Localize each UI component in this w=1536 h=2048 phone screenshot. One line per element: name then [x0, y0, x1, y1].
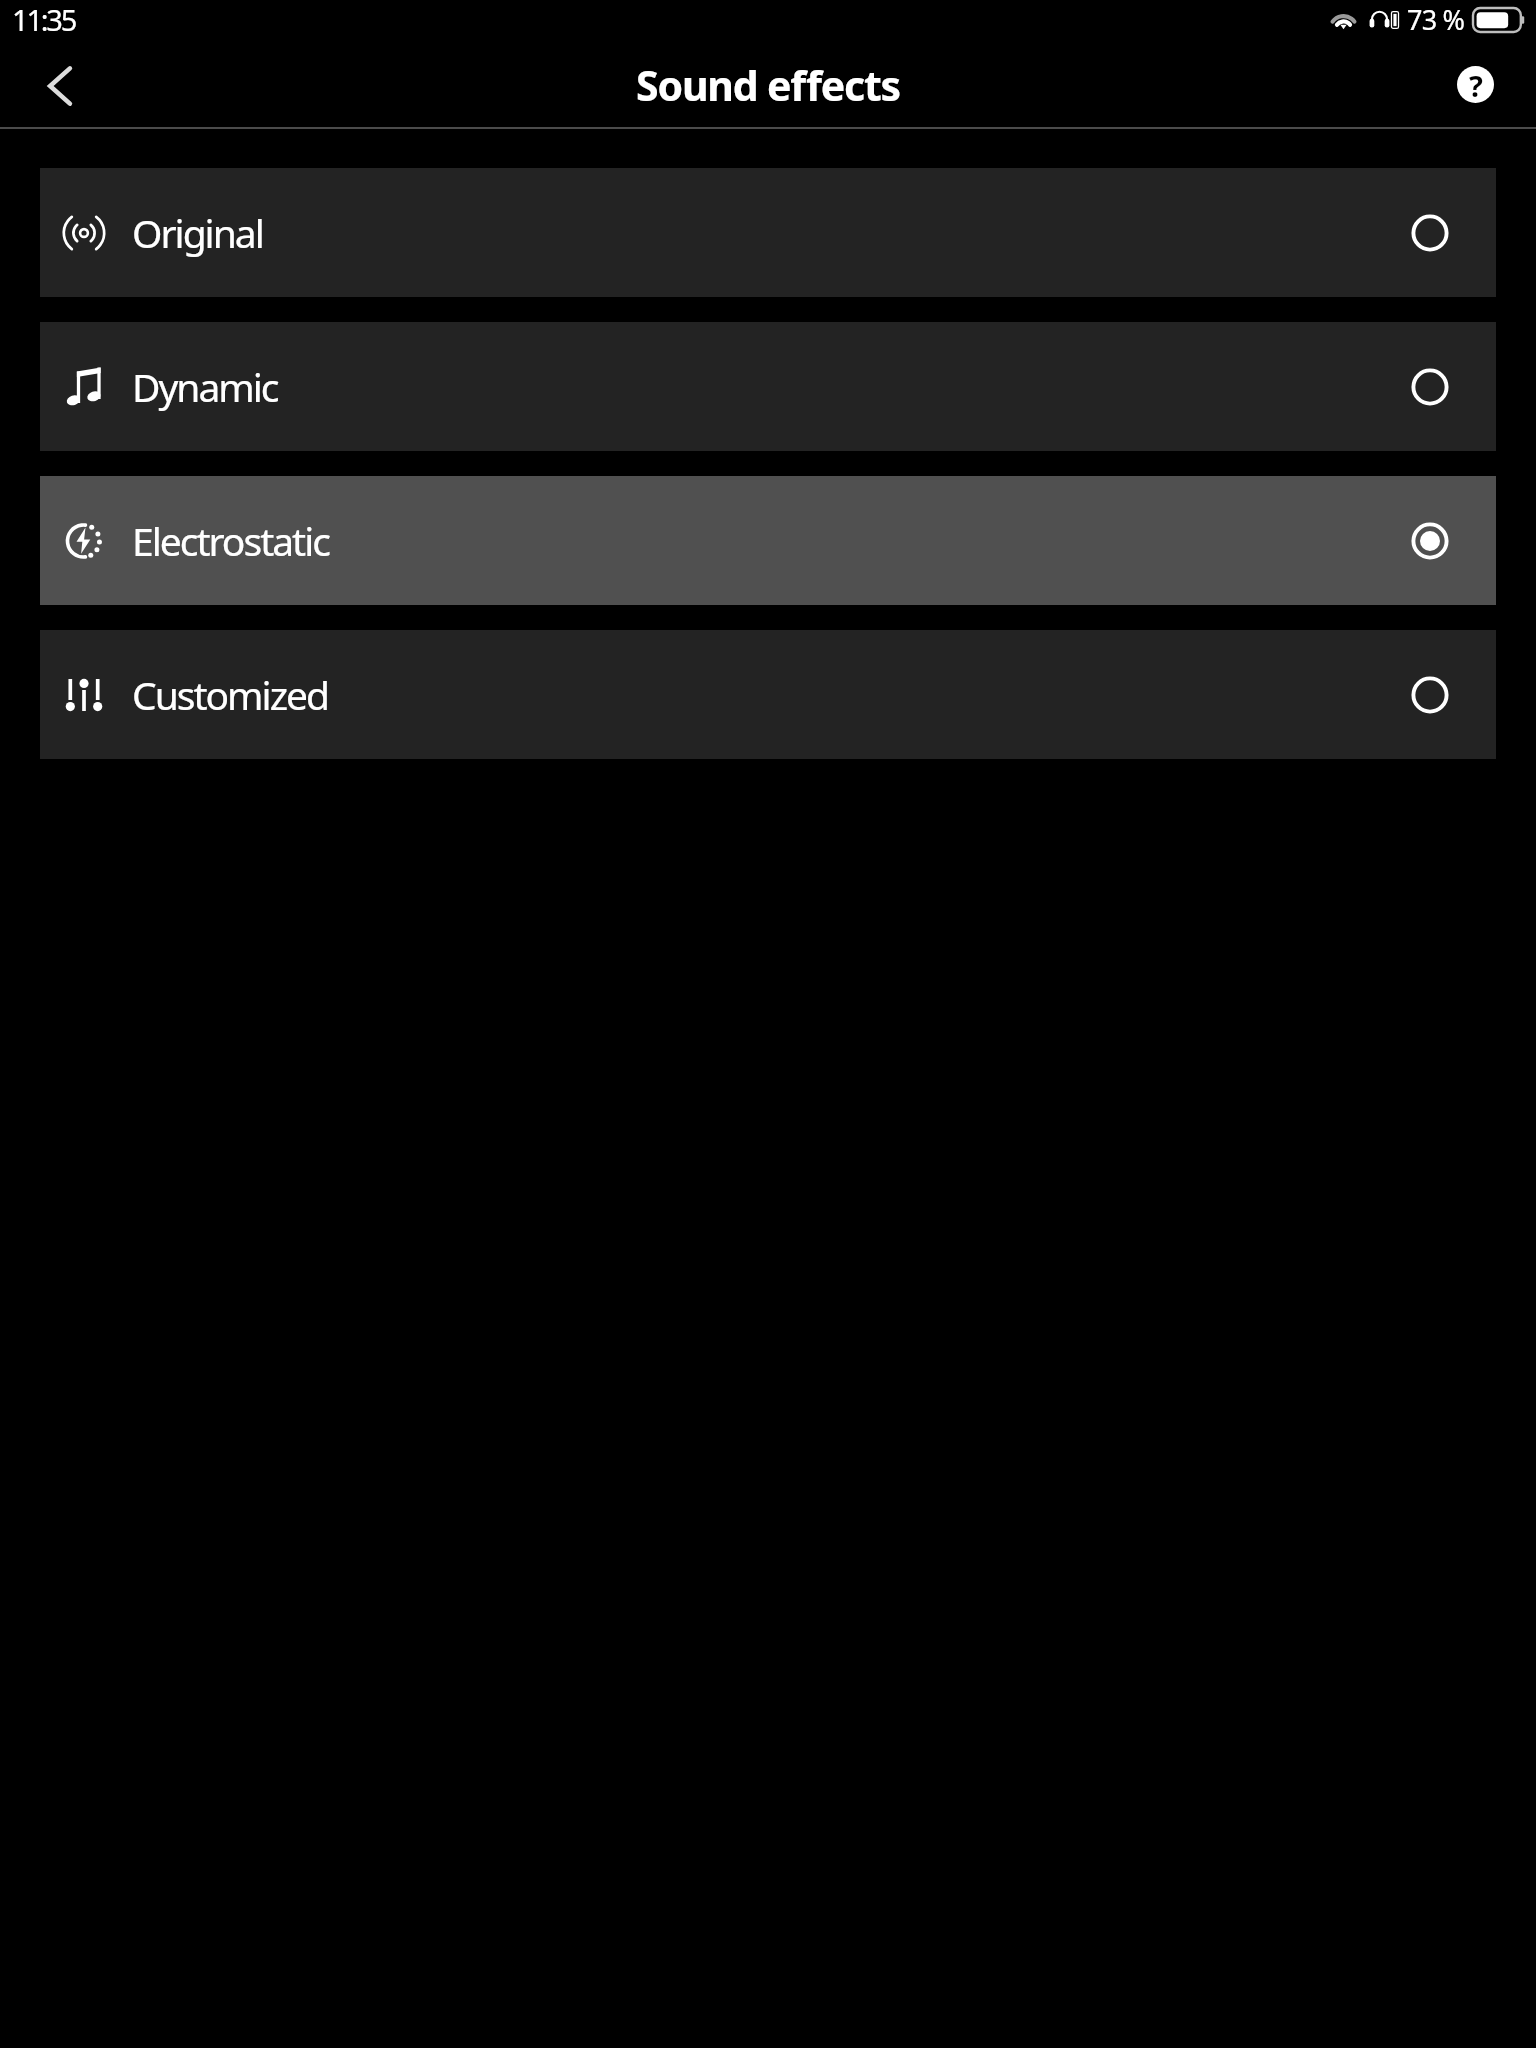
button[interactable]: Original: [40, 168, 1496, 297]
staticText: ?: [1469, 66, 1483, 101]
staticText: Electrostatic: [132, 514, 329, 567]
staticText: Dynamic: [132, 360, 278, 413]
button[interactable]: Help: [1438, 47, 1512, 121]
button[interactable]: Electrostatic: [40, 476, 1496, 605]
staticText: 11:35: [12, 0, 76, 38]
staticText: Customized: [132, 668, 328, 721]
button[interactable]: Customized: [40, 630, 1496, 759]
button[interactable]: Dynamic: [40, 322, 1496, 451]
staticText: 73 %: [1407, 1, 1465, 38]
button[interactable]: Back: [14, 44, 106, 127]
staticText: Original: [132, 206, 263, 259]
staticText: Sound effects: [636, 57, 900, 113]
